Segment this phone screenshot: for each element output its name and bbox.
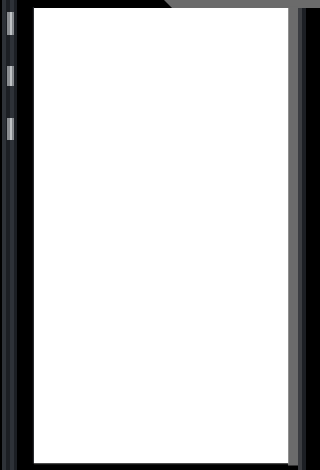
other: Phone device frame with blank screen	[0, 0, 320, 470]
button[interactable]	[0, 0, 320, 470]
